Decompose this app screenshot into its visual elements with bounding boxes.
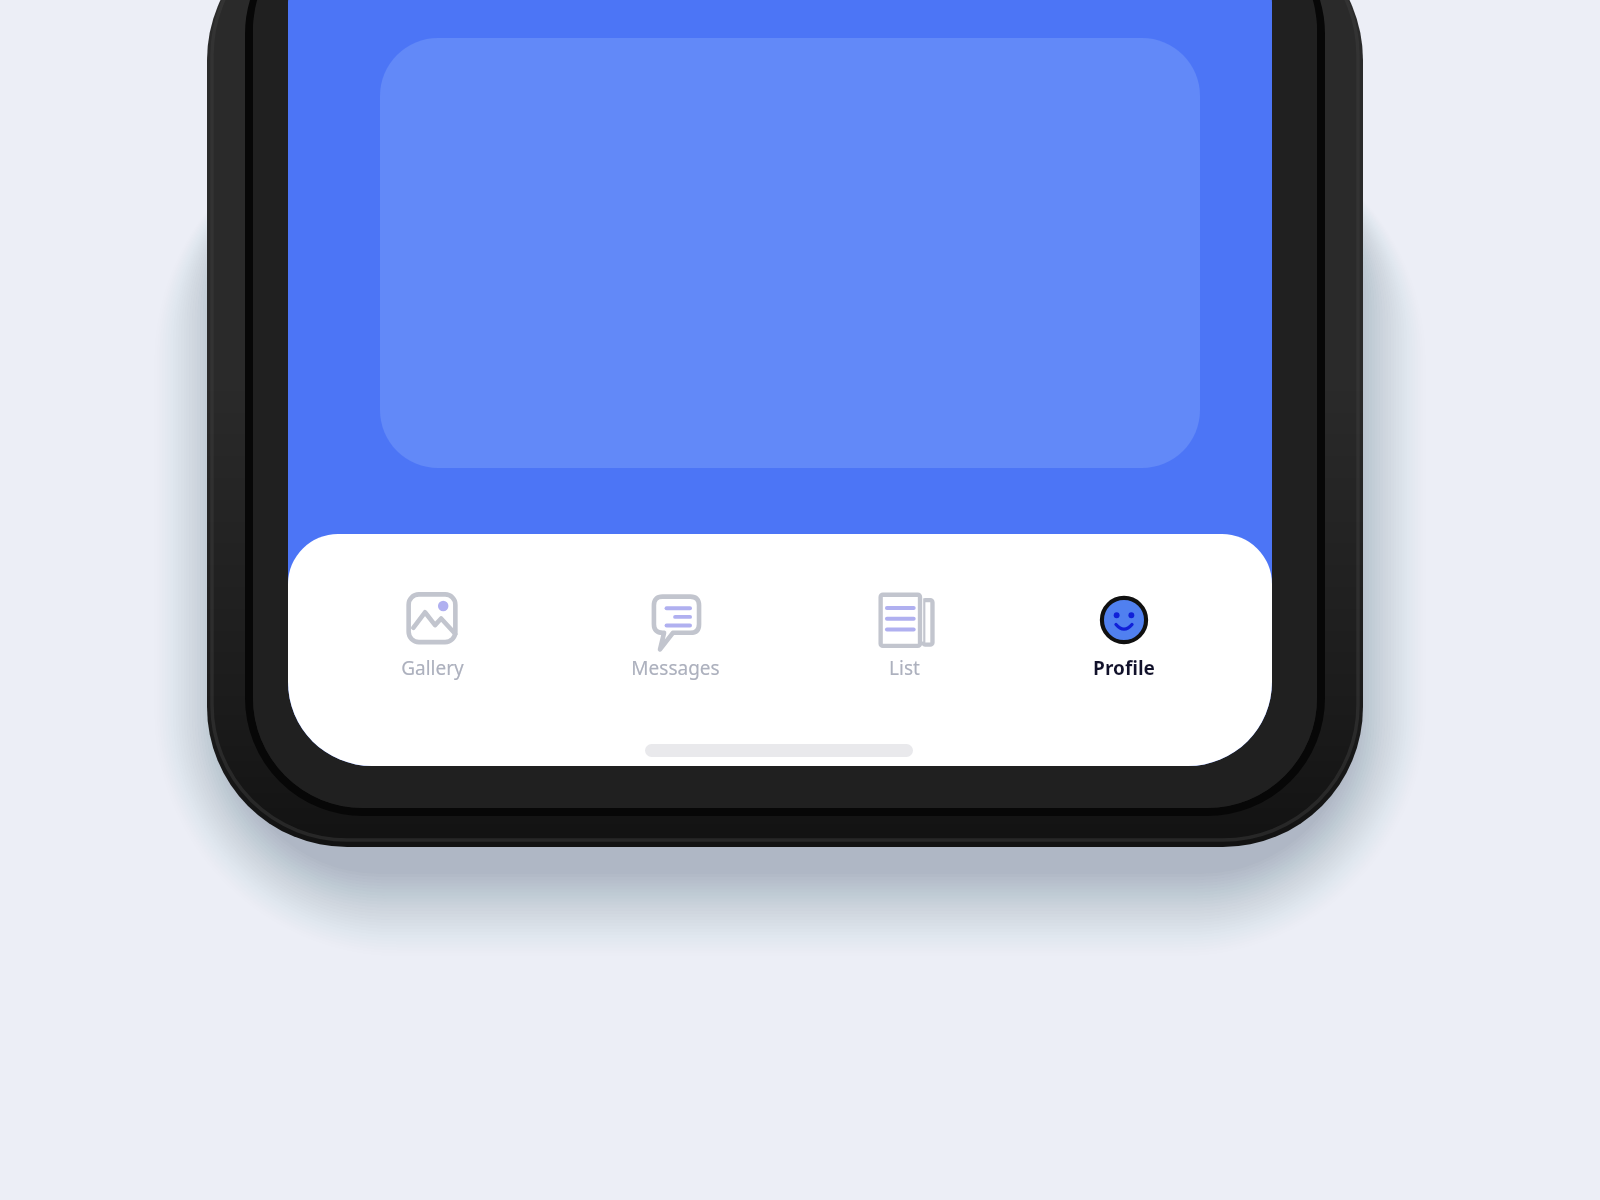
button[interactable]: List [804, 588, 1004, 700]
staticText: Gallery [401, 655, 464, 681]
button[interactable]: Gallery [332, 588, 532, 700]
staticText: Profile [1093, 655, 1155, 681]
staticText: List [889, 655, 920, 681]
staticText: Messages [631, 655, 720, 681]
button[interactable]: Messages [575, 588, 775, 700]
button[interactable]: Profile [1024, 588, 1224, 700]
